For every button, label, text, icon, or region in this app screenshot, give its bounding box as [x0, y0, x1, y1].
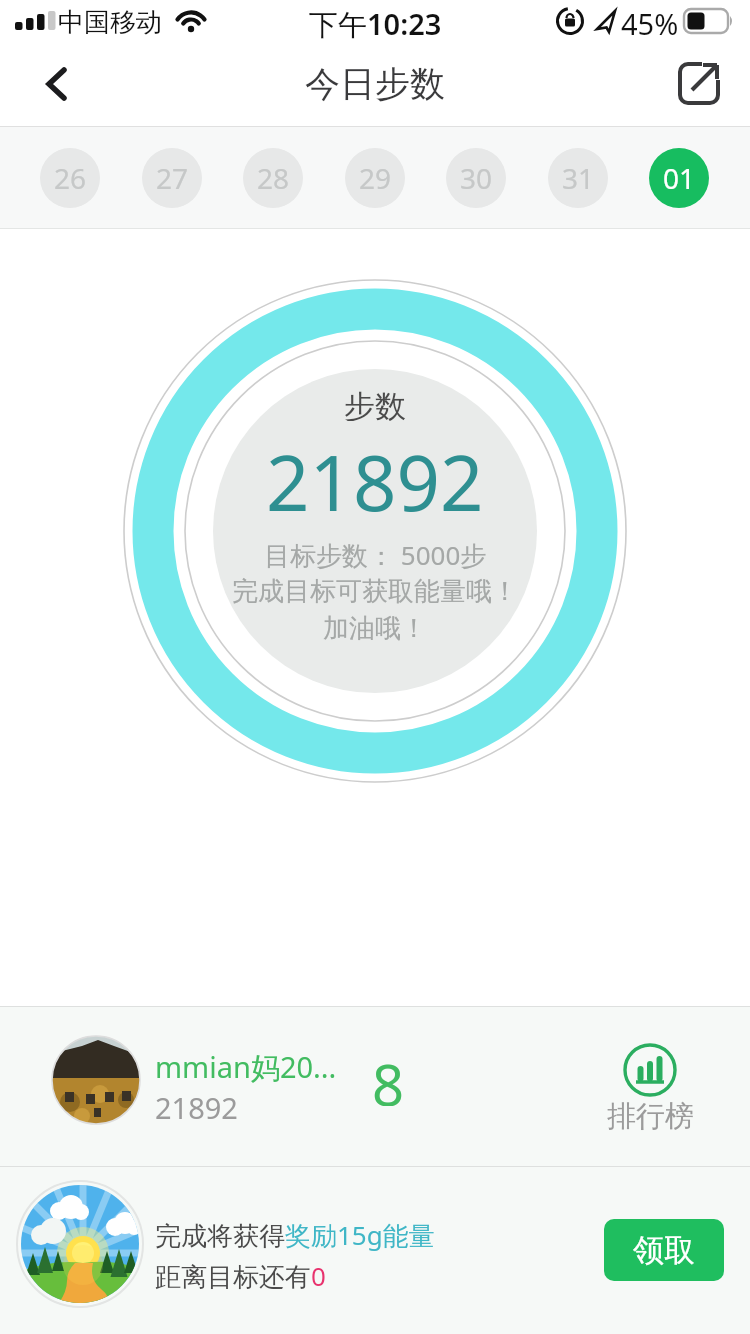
staticText: 步数: [344, 387, 406, 421]
button[interactable]: 28: [243, 148, 303, 208]
staticText: 30: [460, 159, 493, 197]
staticText: 今日步数: [305, 62, 445, 106]
staticText: 21892: [155, 1088, 238, 1124]
staticText: 目标步数： 5000步: [264, 537, 487, 571]
staticText: 8: [372, 1046, 405, 1106]
staticText: 加油哦！: [323, 612, 427, 645]
staticText: 中国移动: [58, 6, 162, 39]
staticText: 21892: [266, 430, 484, 524]
button[interactable]: 30: [446, 148, 506, 208]
staticText: 27: [156, 159, 189, 197]
button[interactable]: [20, 50, 90, 118]
staticText: 排行榜: [607, 1098, 694, 1132]
staticText: 26: [54, 159, 87, 197]
staticText: 01: [663, 159, 696, 197]
button[interactable]: 31: [548, 148, 608, 208]
staticText: 45%: [621, 4, 679, 40]
button[interactable]: 01: [649, 148, 709, 208]
staticText: 距离目标还有0: [155, 1258, 326, 1294]
staticText: 领取: [633, 1231, 695, 1270]
staticText: 完成目标可获取能量哦！: [232, 575, 518, 608]
button[interactable]: 27: [142, 148, 202, 208]
button[interactable]: 领取: [604, 1219, 724, 1281]
staticText: 完成将获得奖励15g能量: [155, 1217, 435, 1253]
staticText: 29: [359, 159, 392, 197]
staticText: 下午10:23: [309, 4, 442, 40]
staticText: 31: [562, 159, 595, 197]
staticText: mmian妈20...: [155, 1047, 337, 1083]
staticText: 28: [257, 159, 290, 197]
button[interactable]: 排行榜: [595, 1030, 705, 1140]
button[interactable]: [0, 1006, 750, 1166]
button[interactable]: [668, 52, 730, 114]
button[interactable]: 26: [40, 148, 100, 208]
button[interactable]: 29: [345, 148, 405, 208]
